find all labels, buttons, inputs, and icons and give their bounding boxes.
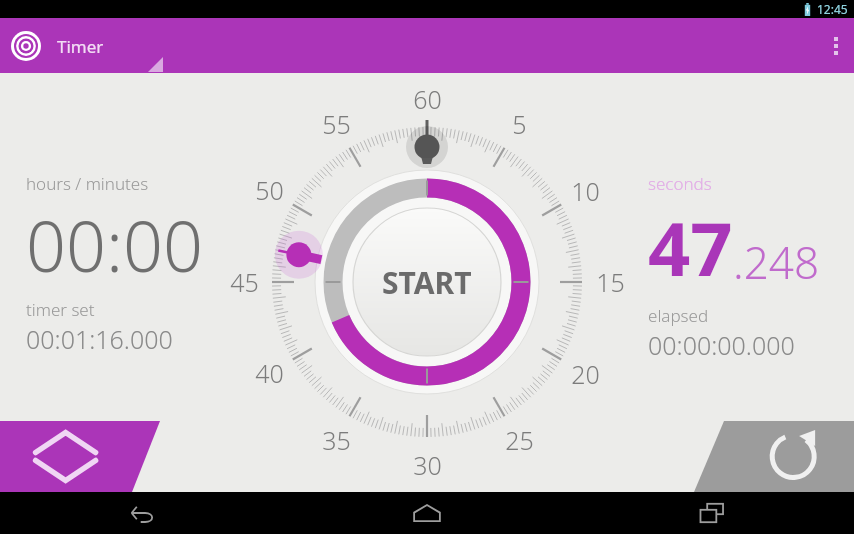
- staticText: 10: [571, 174, 600, 208]
- staticText: 50: [255, 173, 284, 207]
- staticText: 5: [512, 107, 527, 141]
- staticText: .248: [733, 232, 820, 292]
- staticText: 20: [571, 357, 600, 391]
- button[interactable]: Adjust timer: [0, 421, 160, 492]
- staticText: seconds: [648, 172, 712, 195]
- staticText: 12:45: [817, 1, 848, 17]
- button[interactable]: Recent apps: [569, 492, 854, 534]
- button[interactable]: START: [355, 210, 499, 354]
- button[interactable]: Timer: [11, 31, 104, 61]
- staticText: Timer: [57, 35, 104, 58]
- button[interactable]: More options: [818, 18, 854, 73]
- staticText: 47: [648, 197, 733, 298]
- staticText: 55: [322, 107, 351, 141]
- staticText: 00:00: [26, 197, 203, 292]
- button[interactable]: Home: [284, 492, 569, 534]
- staticText: timer set: [26, 298, 95, 321]
- staticText: hours / minutes: [26, 172, 149, 195]
- staticText: 40: [255, 356, 284, 390]
- staticText: 25: [505, 423, 534, 457]
- button[interactable]: Back: [0, 492, 284, 534]
- staticText: 60: [413, 82, 442, 116]
- staticText: 30: [413, 448, 442, 482]
- staticText: 45: [230, 265, 259, 299]
- staticText: 00:00:00.000: [648, 328, 795, 362]
- staticText: 00:01:16.000: [26, 322, 173, 356]
- staticText: 15: [596, 265, 625, 299]
- staticText: elapsed: [648, 304, 709, 327]
- button[interactable]: Reset: [694, 421, 854, 492]
- staticText: 35: [322, 423, 351, 457]
- staticText: START: [382, 262, 472, 303]
